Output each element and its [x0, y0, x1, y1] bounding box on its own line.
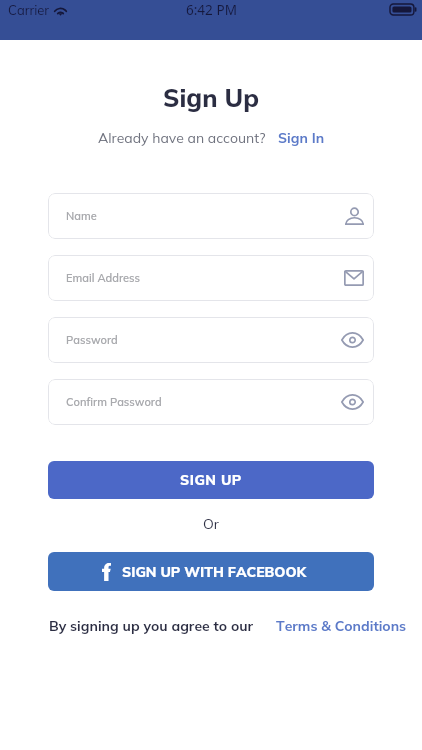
- other: Battery: [390, 4, 417, 15]
- button[interactable]: Terms & Conditions: [276, 617, 407, 635]
- staticText: SIGN UP: [180, 471, 242, 489]
- staticText: Or: [48, 515, 374, 533]
- other: Email address: [344, 270, 364, 286]
- other: Show confirm password: [341, 394, 364, 410]
- staticText: Password: [66, 333, 118, 347]
- staticText: Name: [66, 209, 97, 223]
- button[interactable]: Confirm Password: [48, 379, 374, 425]
- staticText: Email Address: [66, 271, 141, 285]
- button[interactable]: SIGN UP: [48, 461, 374, 499]
- other: Facebook: [102, 563, 111, 581]
- button[interactable]: Email Address: [48, 255, 374, 301]
- staticText: Terms & Conditions: [276, 617, 407, 635]
- button[interactable]: Sign In: [278, 129, 325, 147]
- button[interactable]: Name: [48, 193, 374, 239]
- staticText: Sign In: [278, 129, 325, 147]
- staticText: Confirm Password: [66, 395, 162, 409]
- staticText: Sign Up: [0, 82, 422, 113]
- staticText: Already have an account?: [98, 129, 266, 147]
- staticText: By signing up you agree to our: [49, 617, 254, 635]
- button[interactable]: Facebook: [48, 552, 374, 591]
- other: Show password: [341, 332, 364, 348]
- staticText: Carrier: [8, 2, 50, 18]
- other: Name: [345, 208, 364, 225]
- staticText: SIGN UP WITH FACEBOOK: [122, 563, 307, 581]
- button[interactable]: Password: [48, 317, 374, 363]
- staticText: 6:42 PM: [186, 1, 237, 19]
